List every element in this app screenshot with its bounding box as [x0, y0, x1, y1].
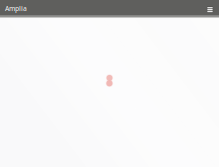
button[interactable]: Menu — [207, 6, 213, 12]
button[interactable]: Amplia — [5, 0, 27, 16]
staticText: Amplia — [5, 4, 27, 13]
